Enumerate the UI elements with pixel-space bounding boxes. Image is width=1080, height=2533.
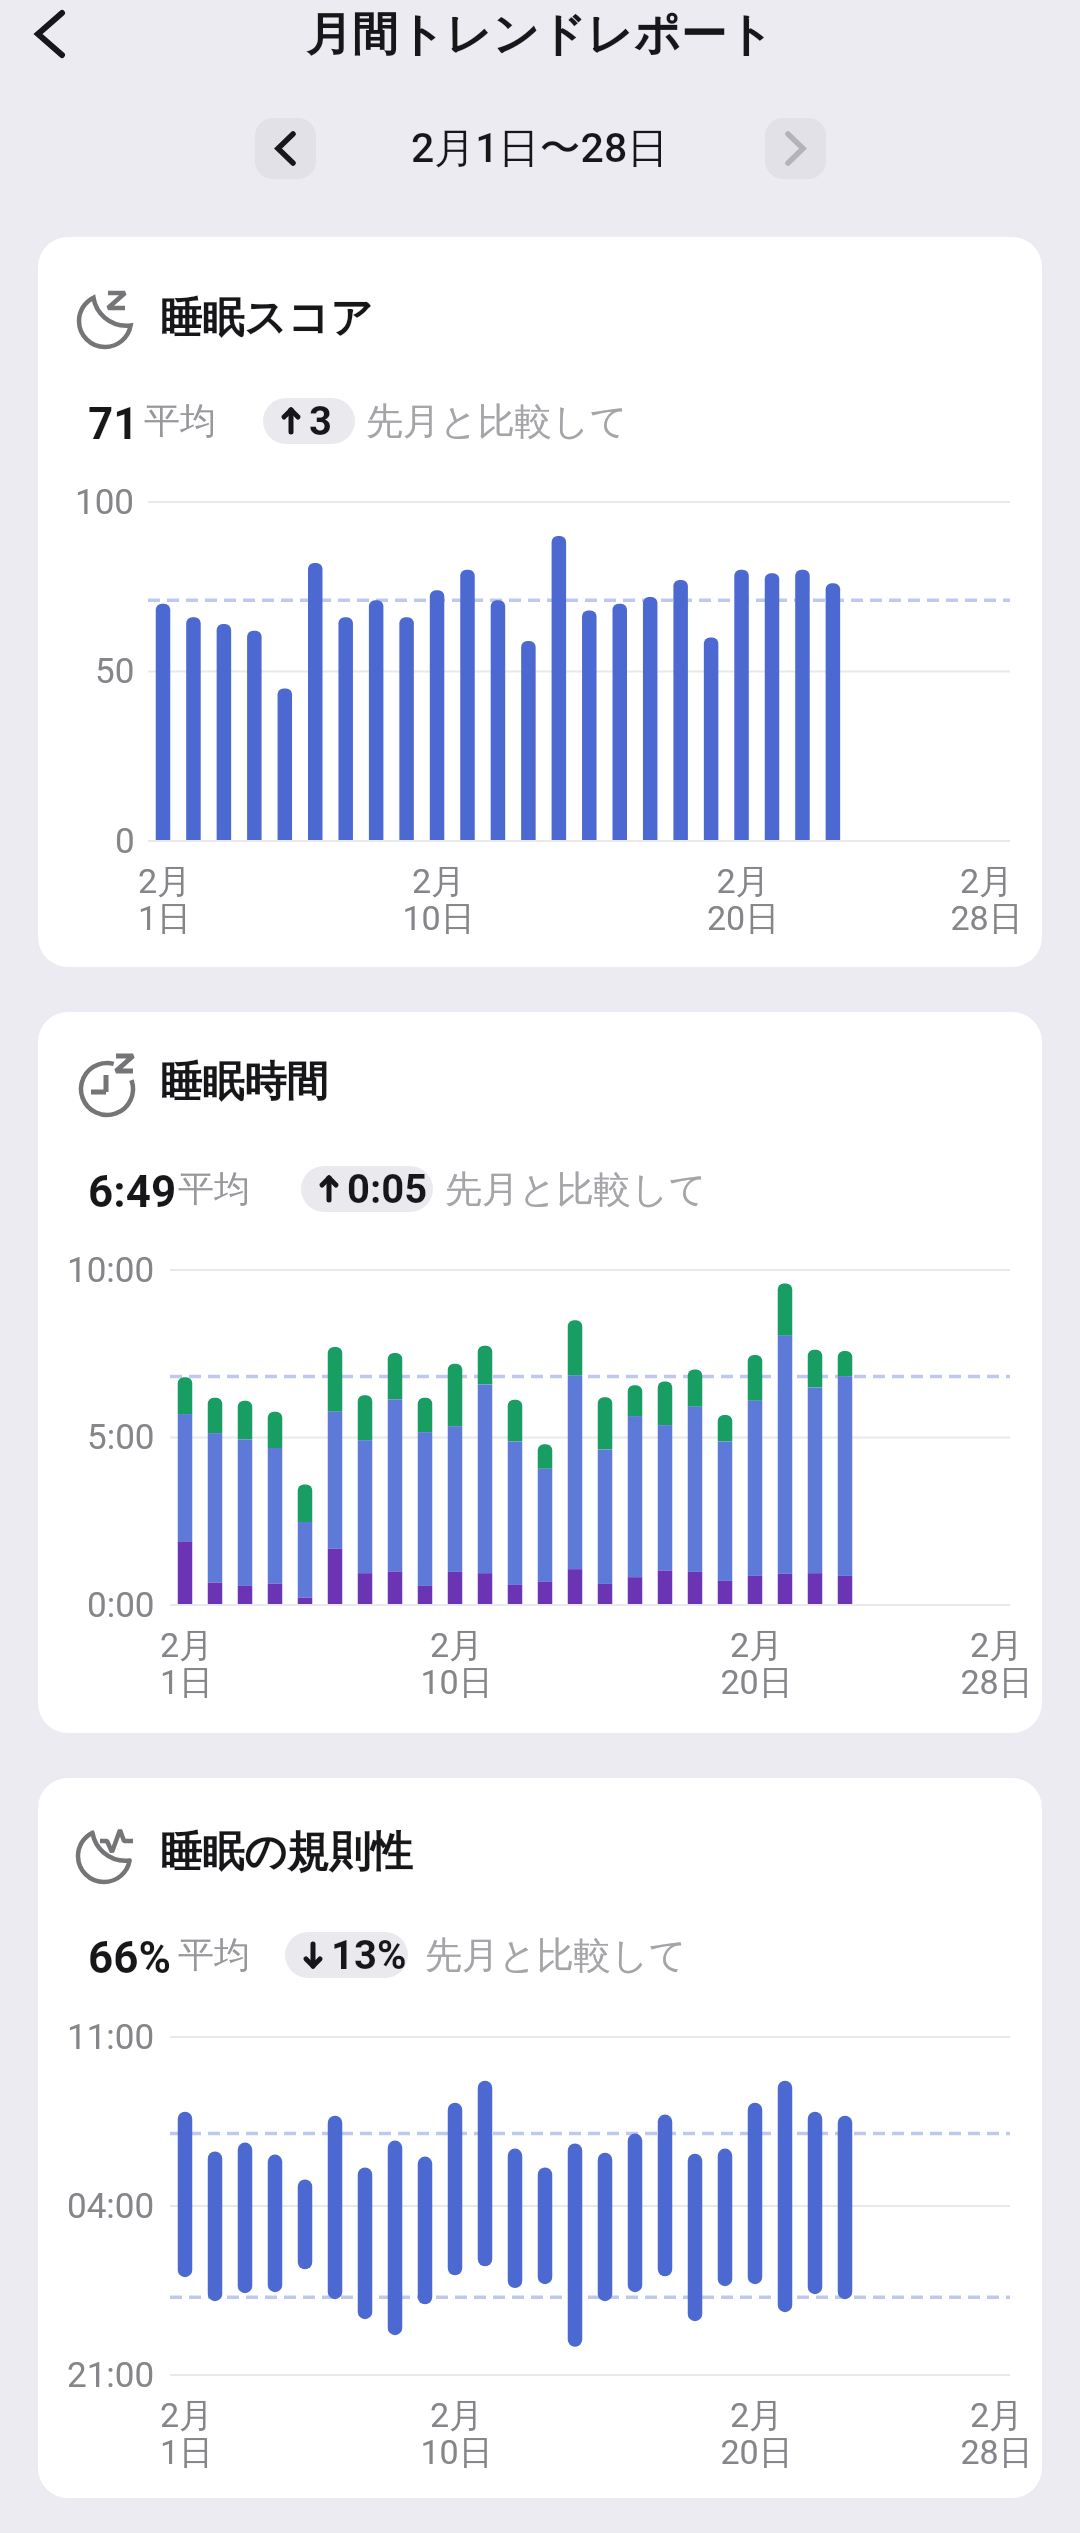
staticText: 睡眠スコア — [160, 292, 373, 345]
staticText: 13% — [331, 1932, 407, 1978]
button[interactable] — [765, 118, 826, 179]
staticText: 睡眠の規則性 — [160, 1826, 413, 1879]
staticText: 66% — [88, 1932, 171, 1977]
staticText: 平均 — [144, 398, 216, 443]
staticText: 6:49 — [88, 1166, 177, 1211]
button[interactable] — [255, 118, 316, 179]
staticText: 平均 — [178, 1166, 250, 1211]
button[interactable]: 睡眠の規則性 — [38, 1778, 1042, 2498]
staticText: 0:05 — [347, 1166, 428, 1212]
button[interactable]: 睡眠時間 — [38, 1012, 1042, 1733]
button[interactable]: 睡眠スコア — [38, 237, 1042, 967]
staticText: 3 — [309, 398, 332, 444]
staticText: 先月と比較して — [366, 398, 628, 443]
button[interactable] — [24, 8, 76, 60]
staticText: 月間トレンドレポート — [306, 6, 774, 64]
staticText: 先月と比較して — [425, 1932, 687, 1977]
staticText: 2月1日〜28日 — [411, 123, 669, 175]
staticText: 71 — [88, 398, 139, 443]
staticText: 先月と比較して — [445, 1166, 707, 1211]
staticText: 睡眠時間 — [160, 1056, 328, 1109]
staticText: 平均 — [178, 1932, 250, 1977]
